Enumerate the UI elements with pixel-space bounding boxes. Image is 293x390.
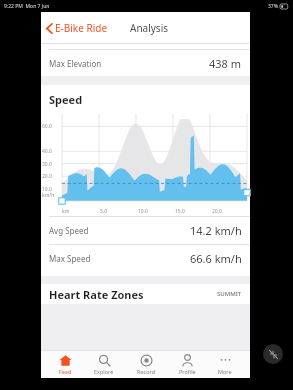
button[interactable]: Max Speed <box>41 245 250 272</box>
staticText: 60.0 <box>42 123 52 130</box>
staticText: 20.0 <box>212 208 222 215</box>
button[interactable]: Record <box>132 353 161 376</box>
staticText: Max Speed <box>49 253 91 264</box>
staticText: Explore <box>94 368 114 375</box>
staticText: 30.0 <box>42 161 52 168</box>
staticText: km <box>62 208 70 215</box>
other: More <box>219 354 232 367</box>
staticText: 14.2 km/h <box>190 223 242 238</box>
staticText: Speed <box>49 92 83 107</box>
button[interactable]: More <box>213 353 237 376</box>
button[interactable]: Profile <box>174 353 201 376</box>
staticText: 438 m <box>209 56 242 71</box>
staticText: Max Elevation <box>49 58 102 69</box>
staticText: 10.0 <box>42 186 52 193</box>
staticText: 40.0 <box>42 148 52 155</box>
button[interactable]: Collapse <box>263 344 283 364</box>
staticText: 66.6 km/h <box>190 251 242 266</box>
other: Explore <box>98 354 111 367</box>
other: Profile <box>181 354 194 367</box>
other: Feed <box>59 354 72 367</box>
button[interactable]: Explore <box>89 353 119 376</box>
staticText: Analysis <box>130 21 169 35</box>
other: Record <box>140 354 153 367</box>
staticText: 10.0 <box>138 208 148 215</box>
staticText: Profile <box>179 368 196 375</box>
button[interactable]: Max Elevation <box>41 50 250 76</box>
staticText: 5.0 <box>100 208 108 215</box>
staticText: km/h <box>42 192 55 199</box>
staticText: E-Bike Ride <box>55 21 108 35</box>
staticText: Heart Rate Zones <box>49 287 144 302</box>
staticText: Feed <box>59 368 72 375</box>
staticText: 37% <box>268 3 278 10</box>
staticText: 20.0 <box>42 173 52 180</box>
staticText: SUMMIT <box>217 290 242 298</box>
staticText: More <box>218 368 232 375</box>
staticText: 15.0 <box>175 208 185 215</box>
staticText: Record <box>137 368 156 375</box>
button[interactable]: Feed <box>54 353 77 376</box>
button[interactable]: E-Bike Ride <box>41 17 114 39</box>
staticText: 9:22 PM Mon 7 Jun <box>4 3 50 10</box>
button[interactable]: Avg Speed <box>41 217 250 244</box>
staticText: Avg Speed <box>49 225 89 236</box>
